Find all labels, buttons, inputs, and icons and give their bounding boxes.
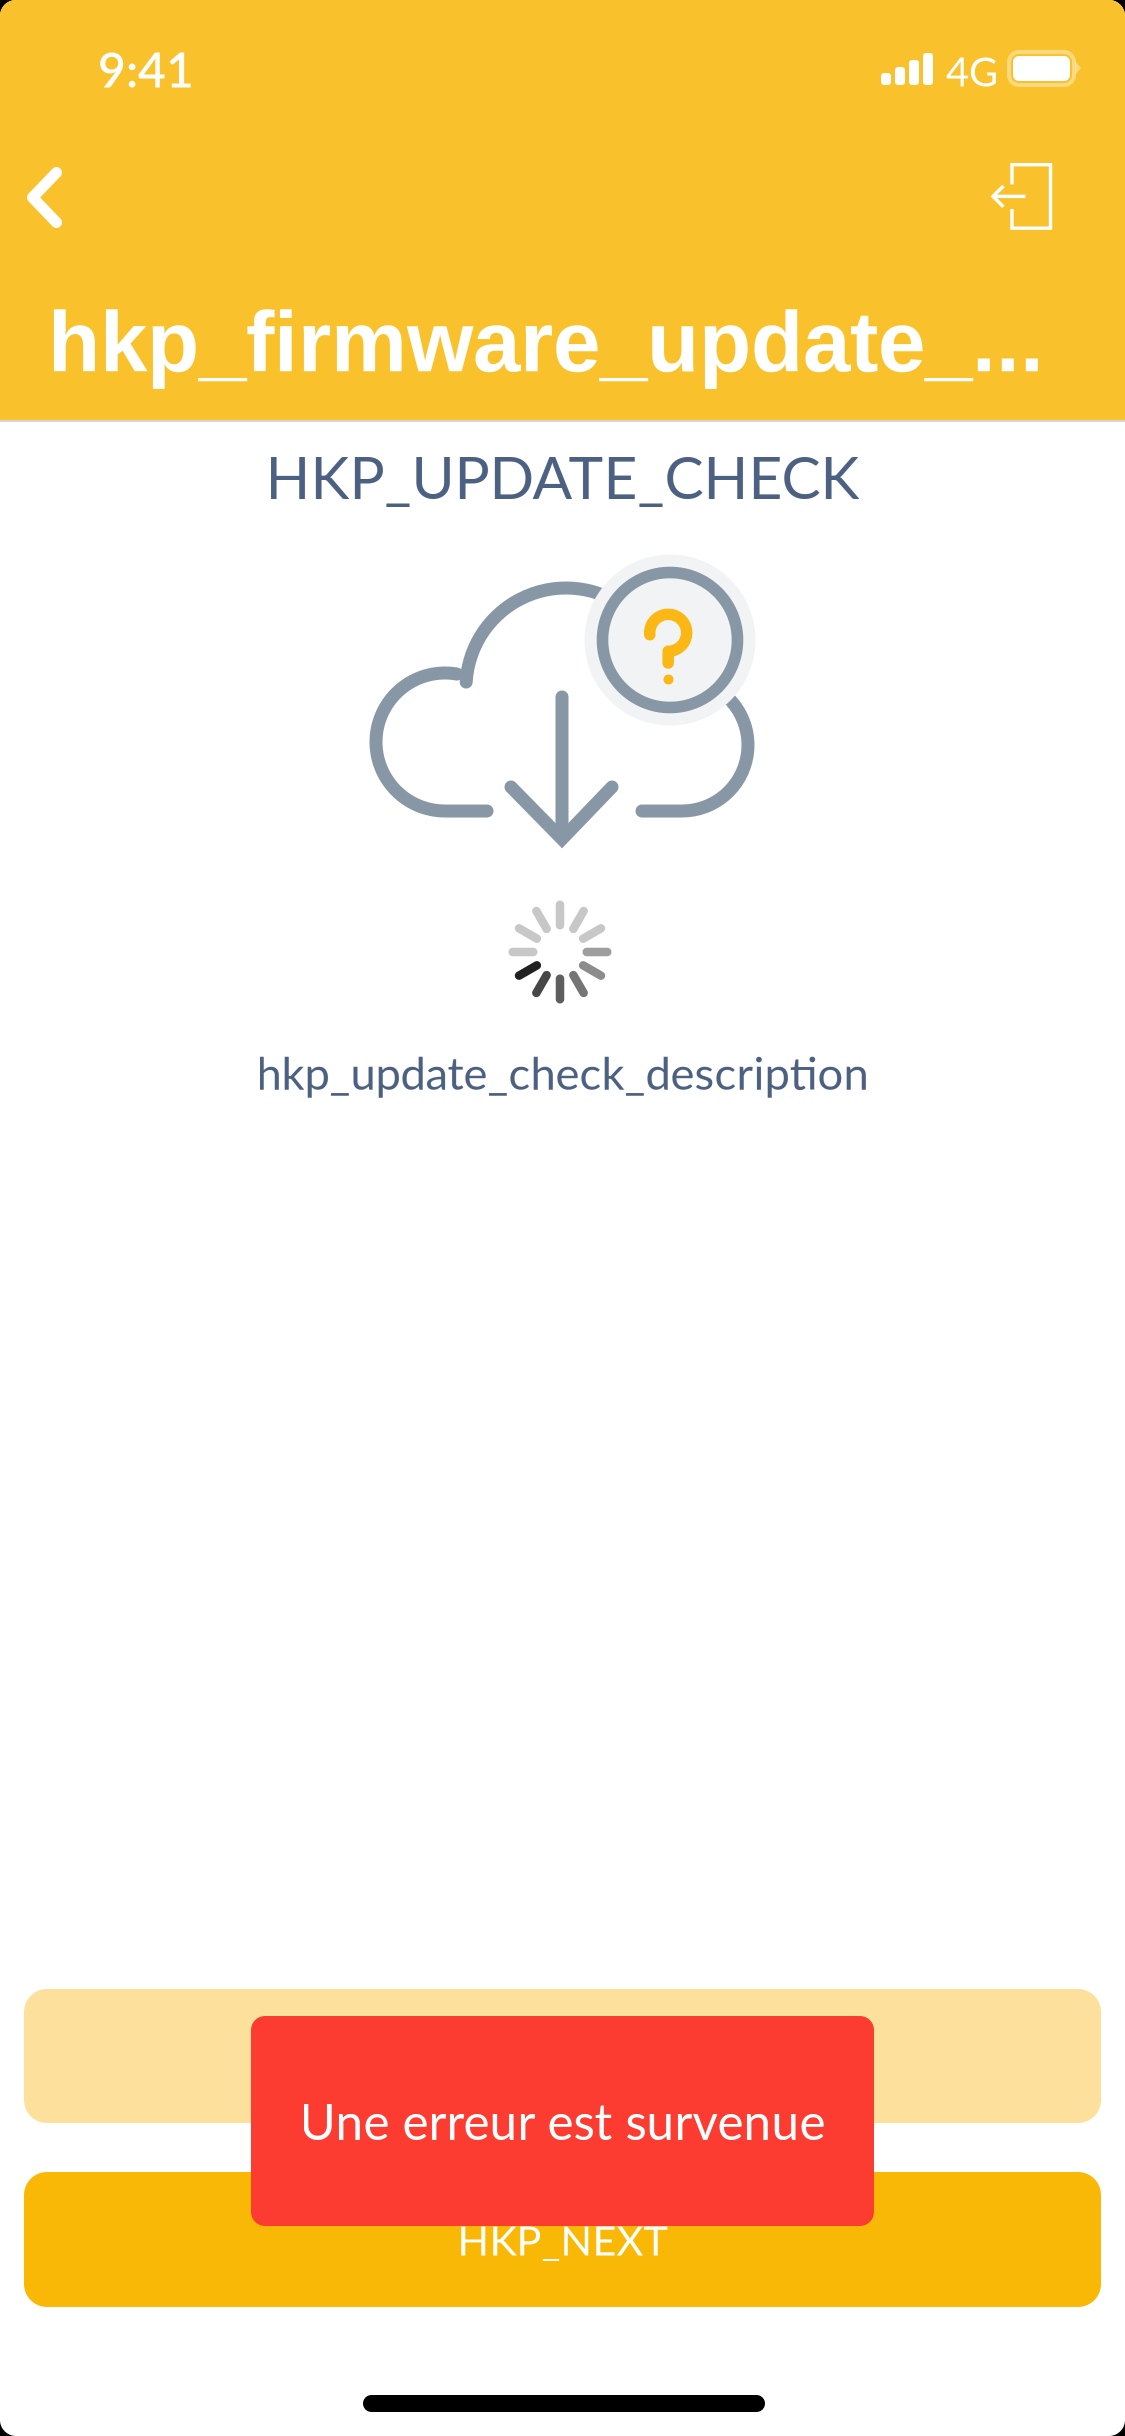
staticText: HKP_NEXT [457,2215,667,2264]
staticText: 9:41 [98,40,194,98]
button[interactable]: HKP_NEXT [24,2172,1101,2307]
staticText: hkp_update_check_description [256,1045,868,1099]
button[interactable]: Back [0,133,120,262]
staticText: HKP_UPDATE_CHECK [265,441,859,511]
staticText: Une erreur est survenue [299,2091,825,2151]
button[interactable]: Secondary action [24,1989,1101,2123]
staticText: 4G [946,47,998,95]
staticText: hkp_firmware_update_... [48,294,1044,389]
button[interactable]: Log out [935,133,1119,262]
